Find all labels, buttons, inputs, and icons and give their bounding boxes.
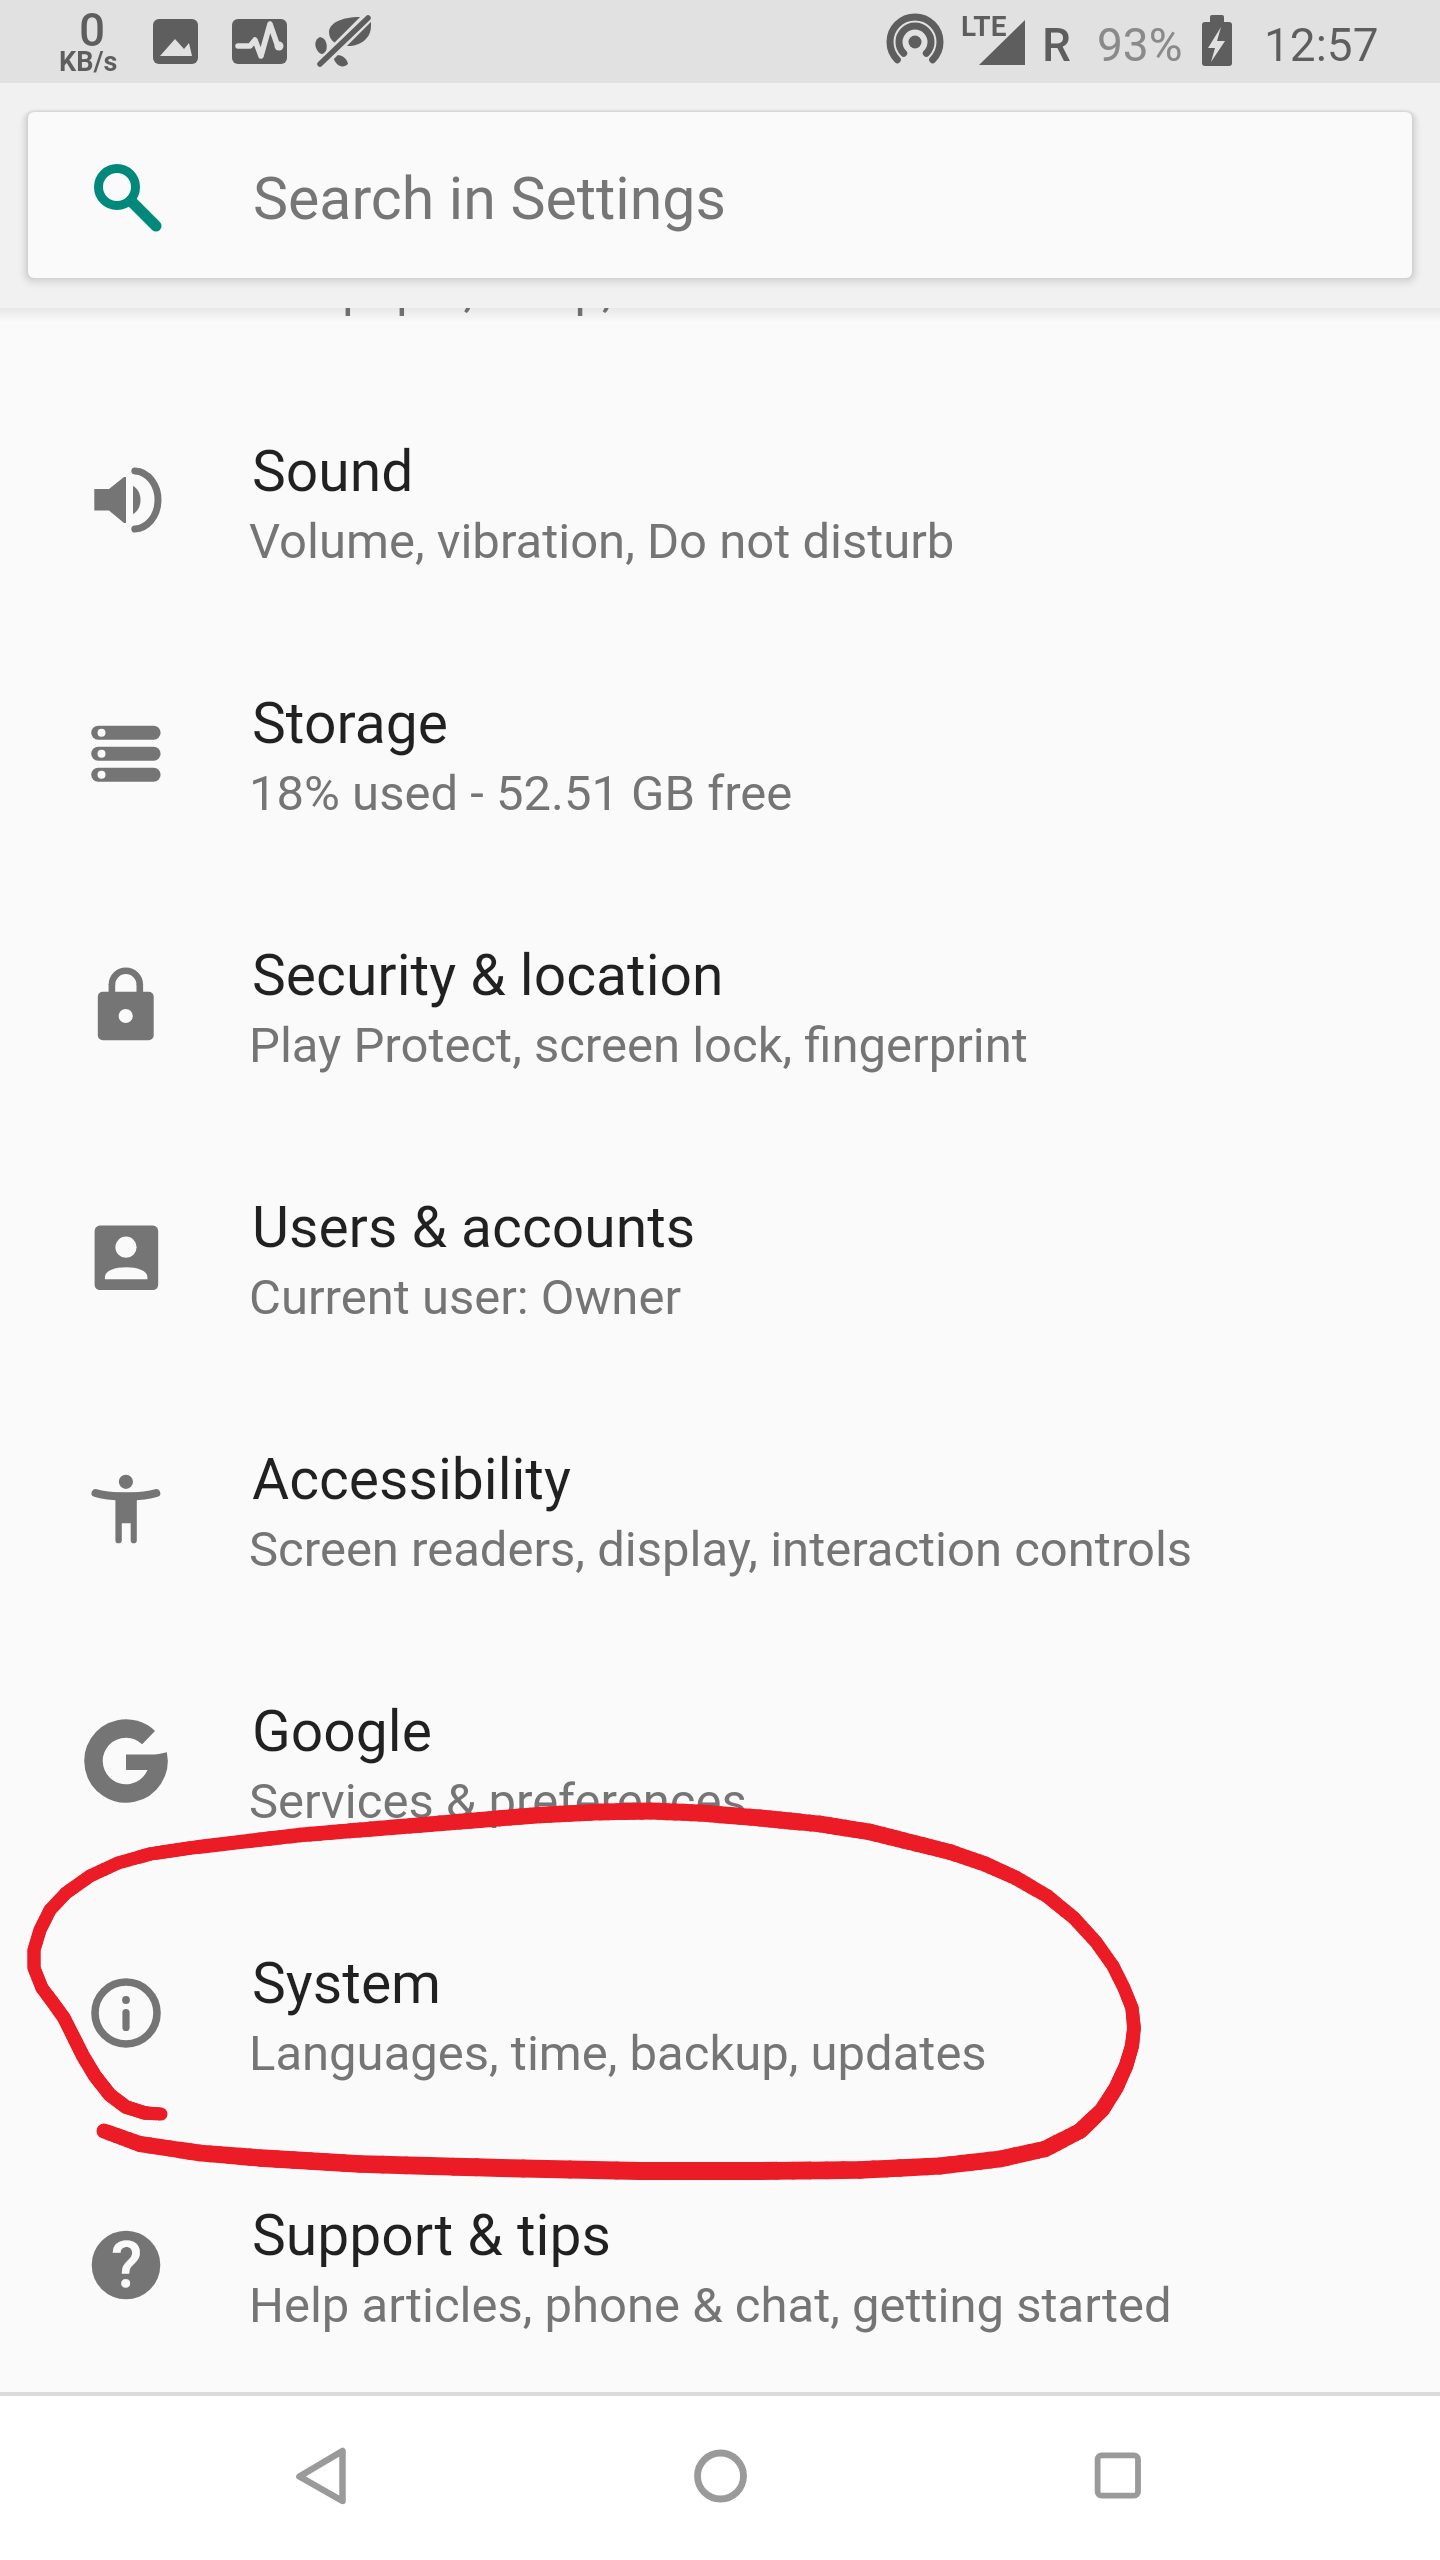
- staticText: Google: [252, 1698, 432, 1765]
- staticText: ?: [111, 2228, 143, 2303]
- staticText: 18% used - 52.51 GB free: [249, 765, 793, 822]
- staticText: KB/s: [59, 46, 118, 78]
- staticText: Accessibility: [252, 1446, 571, 1513]
- staticText: Security & location: [252, 942, 724, 1009]
- button[interactable]: Display: [0, 149, 1440, 401]
- staticText: Help articles, phone & chat, getting sta…: [249, 2277, 1172, 2334]
- staticText: LTE: [961, 10, 1007, 43]
- staticText: Current user: Owner: [249, 1269, 681, 1326]
- staticText: R: [1042, 18, 1071, 72]
- button[interactable]: Accessibility: [0, 1409, 1440, 1661]
- button[interactable]: Security & location: [0, 905, 1440, 1157]
- button[interactable]: ?: [0, 2165, 1440, 2417]
- staticText: Sound: [252, 438, 414, 505]
- staticText: 93%: [1097, 18, 1183, 72]
- staticText: Play Protect, screen lock, fingerprint: [249, 1017, 1028, 1074]
- button[interactable]: Back: [241, 2392, 401, 2560]
- staticText: Support & tips: [252, 2202, 611, 2269]
- staticText: Services & preferences: [249, 1773, 747, 1830]
- button[interactable]: Storage: [0, 653, 1440, 905]
- staticText: System: [252, 1950, 442, 2017]
- staticText: 12:57: [1264, 18, 1379, 72]
- staticText: Screen readers, display, interaction con…: [249, 1521, 1193, 1578]
- button[interactable]: Users & accounts: [0, 1157, 1440, 1409]
- staticText: Languages, time, backup, updates: [249, 2025, 987, 2082]
- button[interactable]: Google: [0, 1661, 1440, 1913]
- staticText: Storage: [252, 690, 448, 757]
- staticText: Search in Settings: [253, 164, 726, 233]
- button[interactable]: Search in Settings: [28, 112, 1412, 278]
- button[interactable]: Sound: [0, 401, 1440, 653]
- staticText: 0: [79, 3, 106, 57]
- staticText: Volume, vibration, Do not disturb: [249, 513, 955, 570]
- staticText: Users & accounts: [252, 1194, 696, 1261]
- button[interactable]: Home: [640, 2392, 800, 2560]
- button[interactable]: Recents: [1038, 2392, 1198, 2560]
- staticText: Display: [252, 186, 437, 253]
- staticText: Wallpaper, sleep, font size: [249, 261, 812, 318]
- button[interactable]: System: [0, 1913, 1440, 2165]
